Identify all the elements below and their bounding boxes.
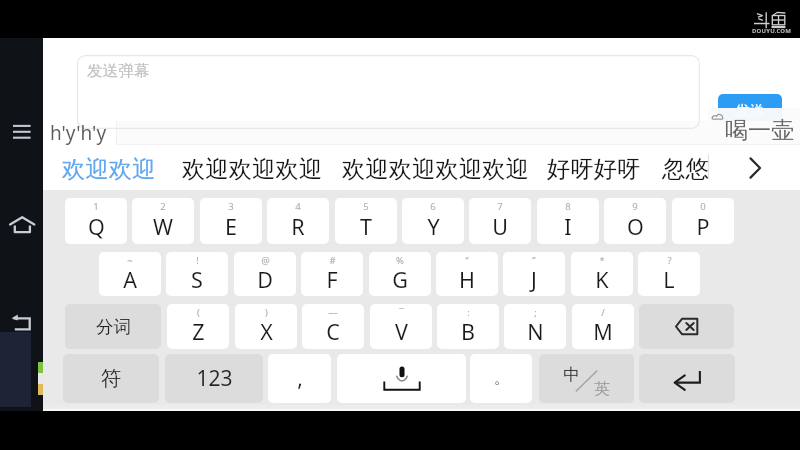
staticText: 发送弹幕 [87,61,150,81]
button[interactable]: # [301,252,363,296]
button[interactable]: % [369,252,431,296]
staticText: Q [88,212,105,241]
button[interactable]: 分词 [65,304,161,349]
staticText: J [531,265,537,294]
staticText: 喝一壶 [725,116,794,145]
staticText: ) [265,306,268,319]
staticText: E [225,212,237,241]
button[interactable]: “ [436,252,498,296]
button[interactable]: ¯ [370,304,432,349]
staticText: 4 [295,200,301,213]
button[interactable]: 4 [267,198,329,244]
button[interactable]: Recent apps [6,116,38,146]
staticText: : [467,306,470,319]
button[interactable]: 好呀好呀 [547,146,641,190]
button[interactable]: ) [235,304,297,349]
staticText: 欢迎欢迎 [62,154,156,183]
button[interactable] [77,55,700,120]
button[interactable]: ! [166,252,228,296]
button[interactable]: * [571,252,633,296]
button[interactable]: Chinese English toggle [539,354,634,403]
staticText: DOUYU.COM [752,27,792,35]
staticText: ; [534,306,537,319]
button[interactable]: 7 [469,198,531,244]
button[interactable]: 。 [470,354,532,403]
staticText: / [601,306,605,319]
staticText: ( [197,306,200,319]
staticText: P [696,212,710,241]
staticText: B [461,317,475,346]
button[interactable]: 8 [537,198,599,244]
staticText: U [492,212,508,241]
staticText: 欢迎欢迎欢迎 [182,154,323,183]
staticText: 英 [594,379,610,399]
staticText: 发送 [736,102,764,120]
button[interactable]: 5 [335,198,397,244]
button[interactable]: More candidates [735,146,775,190]
button[interactable]: ? [638,252,700,296]
button[interactable]: 符 [63,354,159,403]
staticText: O [627,212,644,241]
button[interactable]: 1 [65,198,127,244]
button[interactable]: ” [503,252,565,296]
staticText: D [257,265,273,294]
staticText: * [599,254,605,267]
button[interactable]: ; [504,304,566,349]
staticText: 123 [196,364,233,393]
button[interactable] [708,108,800,144]
button[interactable]: 9 [604,198,666,244]
staticText: M [593,317,613,346]
button[interactable]: Back [6,308,38,336]
staticText: 欢迎欢迎欢迎欢迎 [342,154,530,183]
staticText: ~ [127,254,133,267]
button[interactable]: Enter [639,354,735,403]
staticText: L [663,265,675,294]
staticText: V [395,317,408,346]
button[interactable]: Space [337,354,466,403]
button[interactable]: Backspace [639,304,734,349]
staticText: 2 [160,200,166,213]
staticText: H [459,265,475,294]
staticText: 符 [101,366,121,391]
button[interactable]: 6 [402,198,464,244]
staticText: , [297,364,303,393]
staticText: ! [196,254,199,267]
staticText: Z [192,317,205,346]
staticText: I [564,212,572,241]
staticText: Y [427,212,440,241]
button[interactable]: 欢迎欢迎 [62,146,156,190]
staticText: X [260,317,273,346]
staticText: S [191,265,203,294]
button[interactable]: ( [167,304,229,349]
staticText: — [328,306,338,319]
button[interactable]: 欢迎欢迎欢迎欢迎 [342,146,530,190]
button[interactable]: 欢迎欢迎欢迎 [182,146,323,190]
button[interactable]: / [572,304,634,349]
button[interactable]: : [437,304,499,349]
button[interactable]: 3 [200,198,262,244]
staticText: 9 [632,200,638,213]
staticText: 0 [700,200,706,213]
button[interactable]: @ [234,252,296,296]
staticText: “ [465,254,469,267]
button[interactable]: 忽悠 [662,146,709,190]
button[interactable]: 0 [672,198,734,244]
button[interactable]: ~ [99,252,161,296]
staticText: W [153,212,173,241]
staticText: # [329,254,336,267]
staticText: 5 [363,200,369,213]
staticText: ¯ [399,306,404,319]
button[interactable]: 2 [132,198,194,244]
staticText: N [527,317,544,346]
button[interactable]: — [302,304,364,349]
staticText: h'y'h'y [50,120,107,146]
staticText: 3 [228,200,234,213]
staticText: A [123,265,137,294]
button[interactable]: Home [6,210,38,238]
button[interactable]: 123 [165,354,263,403]
staticText: ? [667,254,672,267]
staticText: G [392,265,408,294]
staticText: C [326,317,340,346]
button[interactable]: 发送 [718,94,782,128]
button[interactable]: , [268,354,331,403]
